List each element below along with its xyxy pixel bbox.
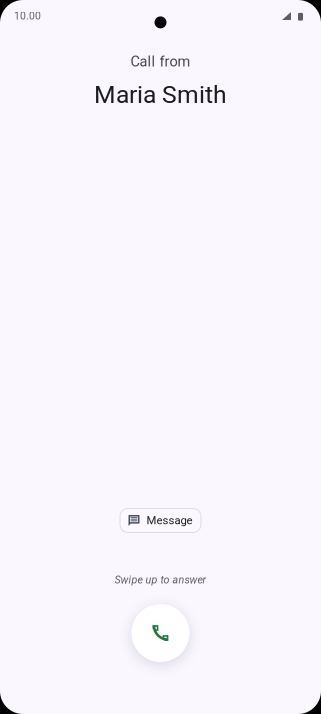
staticText: 10.00 xyxy=(14,10,41,22)
staticText: Message xyxy=(146,514,192,527)
button[interactable]: Answer call xyxy=(131,604,189,662)
staticText: Call from xyxy=(130,53,190,70)
staticText: Maria Smith xyxy=(94,80,227,109)
button[interactable]: Message xyxy=(120,508,201,532)
staticText: Swipe up to answer xyxy=(114,573,206,586)
